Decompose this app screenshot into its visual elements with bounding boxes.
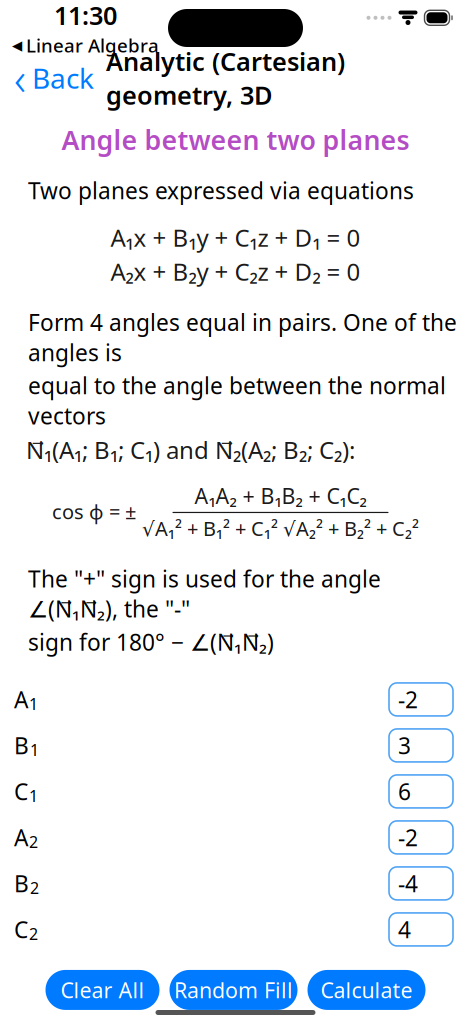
button[interactable]: -2 [389,683,453,716]
button[interactable]: ‹ [0,44,94,112]
button[interactable]: 4 [389,913,453,946]
staticText: ‹ [14,48,26,108]
button[interactable]: Clear All [45,970,159,1010]
button[interactable]: -2 [389,821,453,854]
staticText: A₁A₂ + B₁B₂ + C₁C₂ [194,481,366,510]
staticText: Clear All [60,976,144,1004]
staticText: 2 [29,831,38,852]
staticText: sign for 180° − ∠(N⃗₁N⃗₂) [28,627,274,657]
staticText: C [14,914,28,944]
staticText: A₂x + B₂y + C₂z + D₂ = 0 [110,255,360,287]
staticText: The "+" sign is used for the angle ∠(N⃗₁… [28,564,381,624]
staticText: 1 [30,739,39,760]
staticText: Calculate [320,976,412,1004]
staticText: 2 [29,923,38,944]
staticText: -2 [398,822,418,852]
staticText: equal to the angle between the normal ve… [28,370,446,431]
button[interactable]: Random Fill [169,970,297,1010]
button[interactable]: -4 [389,867,453,900]
staticText: 11:30 [54,0,117,32]
staticText: 1 [29,785,38,806]
staticText: 6 [398,776,411,806]
staticText: Two planes expressed via equations [28,175,414,205]
staticText: 4 [398,914,411,944]
button[interactable]: 11:30 [0,0,159,58]
staticText: Angle between two planes [61,122,409,157]
button[interactable]: 3 [389,729,453,762]
staticText: N⃗₁(A₁; B₁; C₁) and N⃗₂(A₂; B₂; C₂): [26,434,355,466]
staticText: A [14,684,28,714]
staticText: Back [32,59,94,97]
staticText: B [14,868,29,898]
staticText: A [14,822,28,852]
staticText: Analytic (Cartesian) geometry, 3D [106,44,345,112]
staticText: cos φ = ± [52,498,136,525]
staticText: 1 [29,693,38,714]
staticText: Linear Algebra [26,33,159,58]
staticText: Form 4 angles equal in pairs. One of the… [28,307,457,367]
staticText: 2 [30,877,39,898]
staticText: ◀ [12,38,22,53]
staticText: √A₁² + B₁² + C₁² √A₂² + B₂² + C₂² [142,515,419,542]
staticText: 3 [398,730,411,760]
staticText: Random Fill [174,976,293,1004]
button[interactable]: Calculate [307,970,425,1010]
staticText: -2 [398,684,418,714]
staticText: A₁x + B₁y + C₁z + D₁ = 0 [110,221,360,253]
staticText: -4 [398,868,418,898]
button[interactable]: 6 [389,775,453,808]
staticText: B [14,730,29,760]
staticText: C [14,776,28,806]
